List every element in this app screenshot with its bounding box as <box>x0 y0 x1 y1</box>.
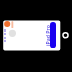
button[interactable]: Home <box>62 32 69 39</box>
button[interactable]: Store home <box>4 21 10 27</box>
button[interactable]: Buy now <box>50 22 56 48</box>
